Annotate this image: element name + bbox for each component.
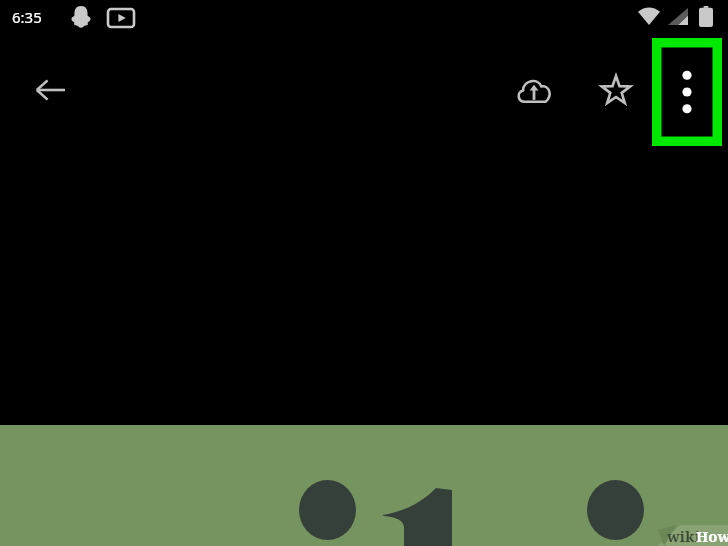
- button[interactable]: Back: [24, 64, 76, 116]
- button[interactable]: Upload to cloud: [508, 64, 560, 116]
- button[interactable]: Star: [590, 64, 642, 116]
- button[interactable]: More options: [652, 38, 722, 146]
- staticText: How: [696, 526, 728, 546]
- staticText: wiki: [667, 526, 700, 546]
- staticText: 6:35: [12, 7, 42, 27]
